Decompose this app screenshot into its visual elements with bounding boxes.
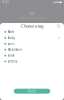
staticText: Meditation [8, 48, 23, 51]
staticText: Study [8, 36, 15, 40]
staticText: ✓ [58, 36, 61, 40]
staticText: Setting [8, 60, 18, 63]
staticText: Social [8, 54, 15, 57]
button[interactable]: Meditation [0, 47, 64, 53]
staticText: Nothing here yet [19, 17, 44, 20]
button[interactable]: Setting [0, 58, 64, 64]
button[interactable]: Social [0, 53, 64, 58]
button[interactable]: Sport [0, 41, 64, 47]
button[interactable]: Done [14, 89, 50, 94]
staticText: Sport [8, 42, 15, 45]
button[interactable]: Study [0, 35, 64, 41]
staticText: Choose a tag [21, 23, 43, 29]
staticText: 9:41 [2, 0, 9, 4]
staticText: Done [28, 89, 36, 93]
staticText: Work [8, 30, 14, 34]
button[interactable]: Work [0, 29, 64, 35]
button[interactable]: Close [56, 24, 61, 28]
